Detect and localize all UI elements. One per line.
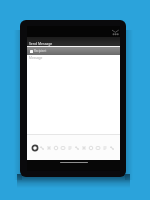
button[interactable]: Emoji [80,144,87,151]
button[interactable]: Draw [94,144,101,151]
button[interactable]: Camera [45,144,52,151]
staticText: Recipient [34,49,47,53]
button[interactable]: Gallery [52,144,59,151]
button[interactable]: Link [101,144,108,151]
staticText: Message [29,56,43,60]
button[interactable]: Record audio [31,144,38,151]
button[interactable]: Attach [38,144,45,151]
button[interactable]: Sticker [59,144,66,151]
button[interactable]: Recipient [27,47,120,55]
button[interactable]: More [108,144,115,151]
button[interactable]: Font [87,144,94,151]
staticText: Send Message [29,41,53,46]
button[interactable]: Location [66,144,73,151]
button[interactable]: Contact [73,144,80,151]
